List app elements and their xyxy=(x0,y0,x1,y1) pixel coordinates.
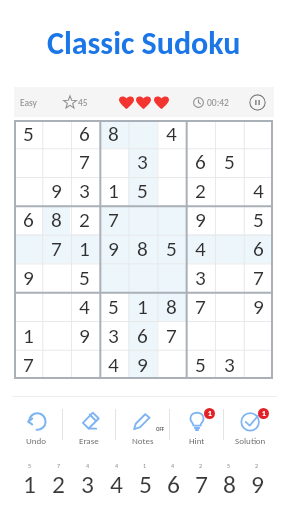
button[interactable] xyxy=(42,263,70,292)
button[interactable]: 7 xyxy=(157,321,186,350)
button[interactable] xyxy=(42,292,70,321)
button[interactable] xyxy=(186,321,215,350)
button[interactable]: 1 xyxy=(224,401,277,448)
button[interactable] xyxy=(14,234,42,263)
button[interactable]: 2 xyxy=(186,176,215,205)
button[interactable] xyxy=(99,148,128,176)
button[interactable]: 5 xyxy=(99,292,128,321)
button[interactable]: 4 xyxy=(102,462,131,494)
button[interactable] xyxy=(128,120,157,148)
button[interactable]: 5 xyxy=(215,462,243,494)
button[interactable] xyxy=(215,292,244,321)
staticText: 9 xyxy=(195,207,206,233)
button[interactable]: 9 xyxy=(99,234,128,263)
button[interactable]: 5 xyxy=(157,234,186,263)
button[interactable]: 9 xyxy=(70,321,99,350)
button[interactable] xyxy=(157,350,186,379)
button[interactable]: 1 xyxy=(170,401,223,448)
button[interactable] xyxy=(42,120,70,148)
button[interactable] xyxy=(157,205,186,234)
button[interactable]: 2 xyxy=(70,205,99,234)
button[interactable]: 1 xyxy=(14,321,42,350)
button[interactable]: 9 xyxy=(244,292,273,321)
button[interactable] xyxy=(244,321,273,350)
button[interactable]: 7 xyxy=(42,234,70,263)
button[interactable]: 8 xyxy=(42,205,70,234)
button[interactable]: 7 xyxy=(70,148,99,176)
staticText: 8 xyxy=(108,121,119,147)
button[interactable] xyxy=(70,350,99,379)
button[interactable]: 5 xyxy=(186,350,215,379)
button[interactable]: 4 xyxy=(244,176,273,205)
button[interactable] xyxy=(215,234,244,263)
button[interactable]: 5 xyxy=(14,120,42,148)
button[interactable]: 6 xyxy=(14,205,42,234)
button[interactable]: 4 xyxy=(157,120,186,148)
button[interactable] xyxy=(14,148,42,176)
button[interactable]: 7 xyxy=(44,462,73,494)
button[interactable] xyxy=(42,321,70,350)
button[interactable] xyxy=(244,148,273,176)
button[interactable] xyxy=(99,263,128,292)
button[interactable] xyxy=(215,321,244,350)
button[interactable] xyxy=(42,148,70,176)
button[interactable] xyxy=(186,120,215,148)
button[interactable]: 7 xyxy=(14,350,42,379)
staticText: 6 xyxy=(195,149,206,175)
button[interactable] xyxy=(244,350,273,379)
button[interactable]: 4 xyxy=(99,350,128,379)
button[interactable]: 6 xyxy=(186,148,215,176)
button[interactable]: 4 xyxy=(159,462,187,494)
button[interactable] xyxy=(157,263,186,292)
button[interactable]: 3 xyxy=(99,321,128,350)
staticText: 4 xyxy=(108,352,119,378)
button[interactable] xyxy=(128,263,157,292)
button[interactable] xyxy=(128,205,157,234)
button[interactable]: 4 xyxy=(70,292,99,321)
button[interactable]: 7 xyxy=(244,263,273,292)
button[interactable] xyxy=(244,120,273,148)
button[interactable]: 9 xyxy=(14,263,42,292)
button[interactable]: 6 xyxy=(70,120,99,148)
button[interactable]: 1 xyxy=(128,292,157,321)
button[interactable]: 6 xyxy=(244,234,273,263)
button[interactable]: 3 xyxy=(186,263,215,292)
button[interactable]: Undo xyxy=(10,401,62,448)
button[interactable]: 5 xyxy=(215,148,244,176)
button[interactable]: 7 xyxy=(186,292,215,321)
button[interactable]: 4 xyxy=(186,234,215,263)
button[interactable]: 3 xyxy=(70,176,99,205)
button[interactable]: Erase xyxy=(63,401,115,448)
button[interactable]: 8 xyxy=(99,120,128,148)
button[interactable]: Pause xyxy=(249,94,266,111)
button[interactable] xyxy=(42,350,70,379)
button[interactable]: 3 xyxy=(128,148,157,176)
button[interactable]: 6 xyxy=(128,321,157,350)
button[interactable] xyxy=(215,176,244,205)
button[interactable]: 5 xyxy=(70,263,99,292)
button[interactable] xyxy=(215,120,244,148)
button[interactable] xyxy=(215,205,244,234)
button[interactable]: 8 xyxy=(157,292,186,321)
button[interactable]: 1 xyxy=(99,176,128,205)
button[interactable]: 9 xyxy=(42,176,70,205)
button[interactable]: 3 xyxy=(215,350,244,379)
button[interactable]: 7 xyxy=(99,205,128,234)
button[interactable]: 9 xyxy=(186,205,215,234)
button[interactable]: 1 xyxy=(70,234,99,263)
button[interactable]: 5 xyxy=(15,462,44,494)
button[interactable] xyxy=(157,176,186,205)
button[interactable]: 5 xyxy=(244,205,273,234)
button[interactable]: 8 xyxy=(128,234,157,263)
button[interactable] xyxy=(157,148,186,176)
button[interactable]: 2 xyxy=(243,462,271,494)
button[interactable] xyxy=(14,292,42,321)
button[interactable] xyxy=(215,263,244,292)
button[interactable] xyxy=(14,176,42,205)
button[interactable]: 5 xyxy=(128,176,157,205)
button[interactable]: 2 xyxy=(187,462,215,494)
button[interactable]: 9 xyxy=(128,350,157,379)
button[interactable]: 4 xyxy=(73,462,102,494)
button[interactable]: OFF xyxy=(116,401,169,448)
button[interactable]: 1 xyxy=(131,462,159,494)
